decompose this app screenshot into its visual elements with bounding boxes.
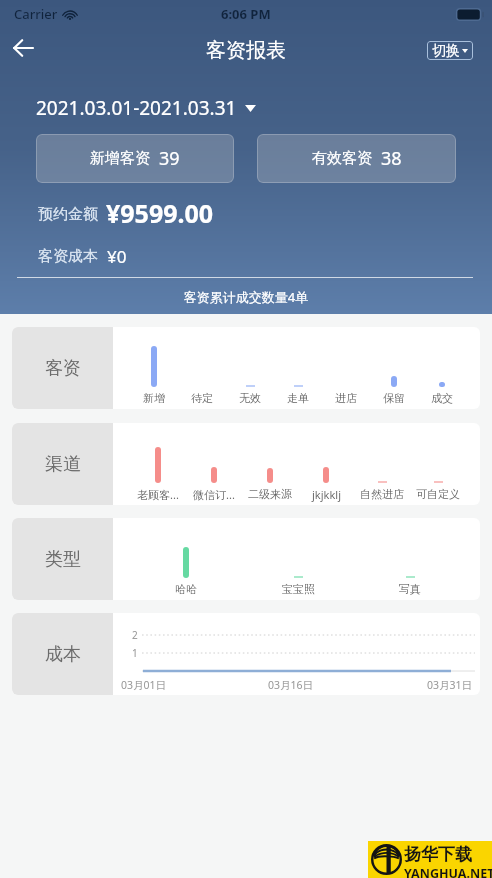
staticText: ¥0	[107, 245, 127, 268]
staticText: 03月31日	[427, 678, 473, 692]
staticText: 客资成本	[38, 247, 98, 266]
staticText: 可自定义	[416, 487, 460, 501]
button[interactable]: 切换	[427, 41, 473, 60]
staticText: 03月16日	[268, 678, 314, 692]
staticText: 切换	[432, 42, 460, 60]
staticText: 哈哈	[175, 582, 197, 596]
staticText: 客资累计成交数量4单	[0, 288, 492, 306]
button[interactable]: 渠道	[12, 423, 480, 505]
staticText: 老顾客...	[137, 487, 179, 502]
staticText: 成交	[431, 391, 453, 405]
staticText: 客资报表	[206, 38, 286, 63]
button[interactable]: 类型	[12, 518, 480, 600]
button[interactable]: 有效客资	[257, 134, 456, 183]
staticText: 新增客资	[90, 149, 150, 168]
staticText: ¥9599.00	[106, 196, 214, 230]
staticText: 39	[159, 146, 180, 171]
staticText: 宝宝照	[282, 582, 315, 596]
staticText: 1	[132, 646, 138, 660]
staticText: 自然进店	[360, 487, 404, 501]
staticText: 渠道	[45, 453, 81, 476]
staticText: 写真	[399, 582, 421, 596]
staticText: 03月01日	[121, 678, 167, 692]
staticText: 新增	[143, 391, 165, 405]
staticText: 待定	[191, 391, 213, 405]
staticText: 二级来源	[248, 487, 292, 501]
staticText: 预约金额	[38, 205, 98, 224]
button[interactable]: 2021.03.01-2021.03.31	[36, 95, 256, 121]
button[interactable]: 成本	[12, 613, 480, 695]
staticText: 2021.03.01-2021.03.31	[36, 95, 237, 121]
staticText: 类型	[45, 548, 81, 571]
staticText: 6:06 PM	[221, 5, 271, 23]
staticText: 无效	[239, 391, 261, 405]
staticText: 有效客资	[312, 149, 372, 168]
staticText: 成本	[45, 643, 81, 666]
staticText: 38	[381, 146, 402, 171]
staticText: 扬华下载	[404, 844, 472, 865]
staticText: YANGHUA.NET	[404, 865, 492, 878]
button[interactable]: Back	[3, 30, 43, 70]
staticText: jkjkklj	[312, 487, 341, 502]
staticText: 客资	[45, 357, 81, 380]
button[interactable]: 新增客资	[36, 134, 234, 183]
staticText: 2	[132, 628, 138, 642]
staticText: 保留	[383, 391, 405, 405]
button[interactable]: 客资	[12, 327, 480, 409]
staticText: 进店	[335, 391, 357, 405]
staticText: Carrier	[14, 5, 58, 23]
staticText: 微信订...	[193, 487, 235, 502]
staticText: 走单	[287, 391, 309, 405]
